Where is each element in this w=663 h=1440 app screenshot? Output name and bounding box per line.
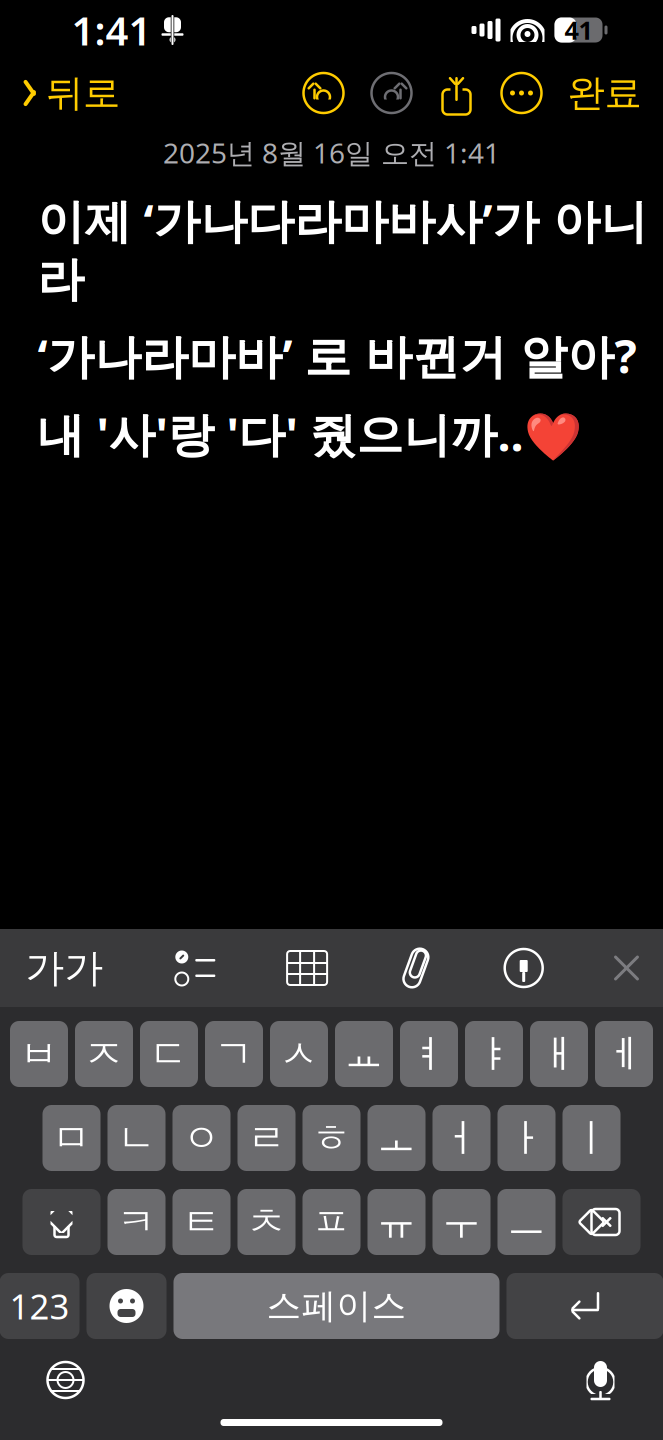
button[interactable]: ㅌ (172, 1189, 230, 1255)
button[interactable]: ㅏ (497, 1105, 555, 1171)
staticText: ‘가나라마바’ 로 바뀐거 알아? (37, 324, 636, 386)
staticText: ㅑ (474, 1030, 513, 1078)
button[interactable]: 다음 키보드 (33, 1348, 97, 1412)
button[interactable]: 삭제 (562, 1189, 640, 1255)
button[interactable]: ㅁ (42, 1105, 100, 1171)
staticText: ㅌ (182, 1198, 221, 1246)
button[interactable]: 첨부 (384, 946, 448, 990)
staticText: ㄷ (149, 1030, 188, 1078)
staticText: ㅣ (572, 1114, 611, 1162)
button[interactable]: ㅗ (367, 1105, 425, 1171)
button[interactable]: ㄹ (237, 1105, 295, 1171)
button[interactable]: 뒤로 (9, 62, 132, 124)
button[interactable]: ㅋ (107, 1189, 165, 1255)
staticText: ㅅ (279, 1030, 318, 1078)
staticText: ㅏ (507, 1114, 546, 1162)
button[interactable]: 123 (0, 1273, 79, 1339)
button[interactable]: 닫기 (599, 949, 653, 987)
button[interactable]: 다시 실행 (369, 71, 413, 115)
button[interactable]: 줄바꿈 (506, 1273, 663, 1339)
staticText: ㄱ (214, 1030, 253, 1078)
staticText: ㅜ (442, 1198, 481, 1246)
button[interactable]: 음성 입력 (571, 1346, 629, 1414)
button[interactable]: ㅡ (497, 1189, 555, 1255)
button[interactable]: ㄱ (205, 1021, 263, 1087)
staticText: 완료 (567, 70, 641, 116)
button[interactable]: 추가 옵션 (499, 71, 543, 115)
button[interactable]: 마크업 (491, 947, 557, 989)
button[interactable]: 완료 (559, 62, 649, 124)
button[interactable]: ㅓ (432, 1105, 490, 1171)
staticText: ㅊ (247, 1198, 286, 1246)
button[interactable]: 시프트 (22, 1189, 100, 1255)
button[interactable]: ㅊ (237, 1189, 295, 1255)
staticText: 뒤로 (46, 70, 120, 116)
button[interactable]: 표 (273, 948, 341, 988)
staticText: 2025년 8월 16일 오전 1:41 (163, 134, 500, 171)
staticText: ㅁ (52, 1114, 91, 1162)
staticText: 가가 (25, 944, 103, 992)
button[interactable]: 가가 (11, 934, 117, 1002)
button[interactable]: ㅔ (595, 1021, 653, 1087)
button[interactable]: ㅠ (367, 1189, 425, 1255)
staticText: 123 (9, 1283, 69, 1329)
staticText: ㅓ (442, 1114, 481, 1162)
button[interactable]: 체크리스트 (160, 948, 230, 988)
staticText: ㅛ (344, 1030, 383, 1078)
staticText: ㅈ (84, 1030, 123, 1078)
staticText: 이제 ‘가나다라마바사’가 아니라 (37, 189, 647, 308)
button[interactable]: 실행 취소 (301, 71, 345, 115)
button[interactable]: 스페이스 (173, 1273, 499, 1339)
button[interactable]: ㅐ (530, 1021, 588, 1087)
staticText: ㅗ (377, 1114, 416, 1162)
staticText: 내 '사'랑 '다' 줬으니까..❤️ (37, 402, 581, 464)
staticText: ㅔ (604, 1030, 643, 1078)
staticText: ㄴ (117, 1114, 156, 1162)
staticText: ㅋ (117, 1198, 156, 1246)
button[interactable]: ㄷ (140, 1021, 198, 1087)
button[interactable]: ㅜ (432, 1189, 490, 1255)
button[interactable]: ㅂ (10, 1021, 68, 1087)
staticText: ㅎ (312, 1114, 351, 1162)
staticText: 스페이스 (266, 1285, 406, 1327)
button[interactable]: ㅕ (400, 1021, 458, 1087)
button[interactable]: 공유 (439, 71, 473, 115)
button[interactable]: ㅍ (302, 1189, 360, 1255)
button[interactable]: ㅅ (270, 1021, 328, 1087)
button[interactable]: ㅈ (75, 1021, 133, 1087)
button[interactable]: ㅑ (465, 1021, 523, 1087)
staticText: 41 (564, 13, 592, 47)
staticText: 1:41 (71, 3, 151, 56)
staticText: ㅂ (19, 1030, 58, 1078)
staticText: ㅐ (539, 1030, 578, 1078)
staticText: ㅇ (182, 1114, 221, 1162)
button[interactable]: ㅣ (562, 1105, 620, 1171)
button[interactable]: ㄴ (107, 1105, 165, 1171)
staticText: ㄹ (247, 1114, 286, 1162)
staticText: ㅠ (377, 1198, 416, 1246)
button[interactable]: ㅇ (172, 1105, 230, 1171)
staticText: ㅕ (409, 1030, 448, 1078)
staticText: ㅡ (507, 1198, 546, 1246)
button[interactable]: ㅛ (335, 1021, 393, 1087)
button[interactable]: ㅎ (302, 1105, 360, 1171)
button[interactable]: 이모지 (86, 1273, 166, 1339)
staticText: ㅍ (312, 1198, 351, 1246)
